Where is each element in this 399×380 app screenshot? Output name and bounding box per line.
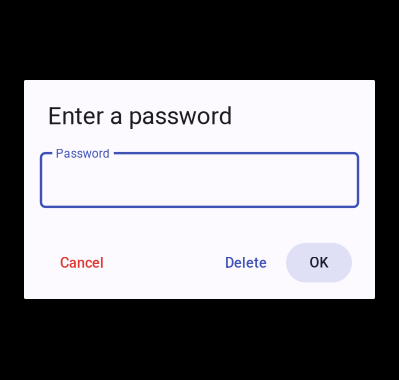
button[interactable]: OK [286, 243, 352, 282]
button[interactable]: Cancel [48, 244, 116, 281]
staticText: OK [309, 254, 328, 271]
button[interactable]: Delete [213, 244, 279, 281]
staticText: Delete [225, 254, 267, 271]
staticText: Enter a password [48, 102, 233, 130]
staticText: Password [56, 146, 110, 161]
staticText: Cancel [60, 254, 104, 271]
